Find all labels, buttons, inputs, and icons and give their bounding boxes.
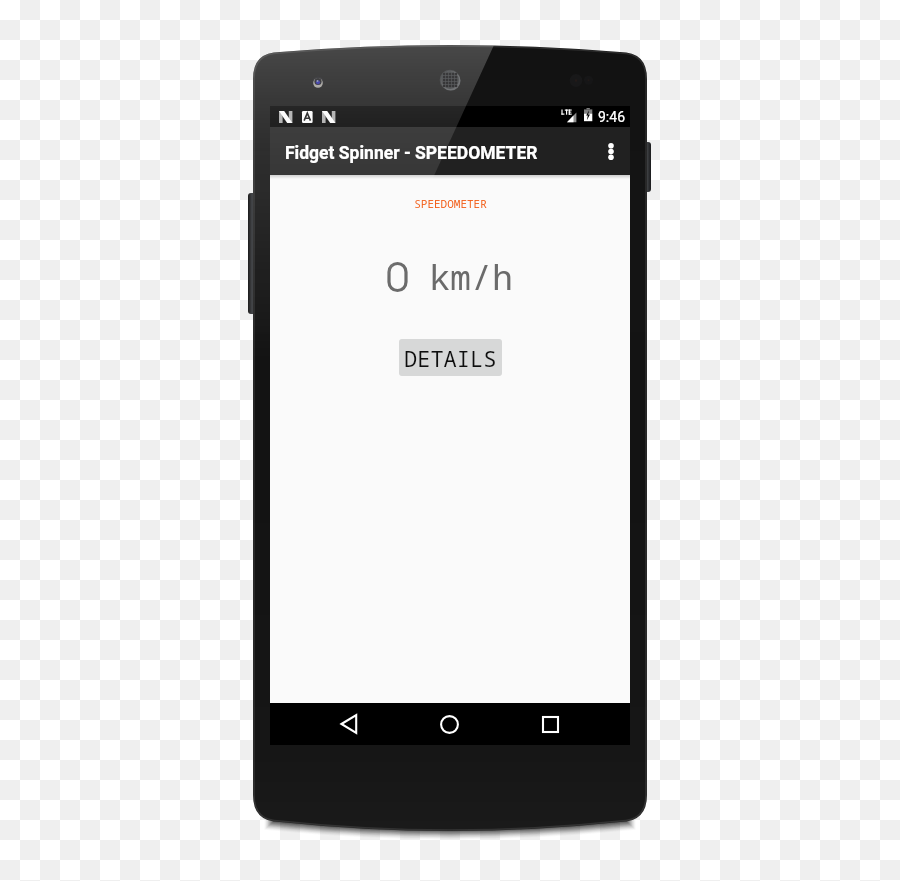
staticText: SPEEDOMETER [414,196,487,211]
staticText: 9:46 [598,109,625,125]
staticText: DETAILS [404,343,497,373]
button[interactable]: Back [328,703,370,745]
button[interactable]: Home [428,703,470,745]
button[interactable]: More options [592,127,630,175]
staticText: Fidget Spinner - SPEEDOMETER [285,143,538,164]
button[interactable]: Recents [529,703,571,745]
staticText: km/h [408,253,514,301]
button[interactable]: DETAILS [399,339,502,376]
